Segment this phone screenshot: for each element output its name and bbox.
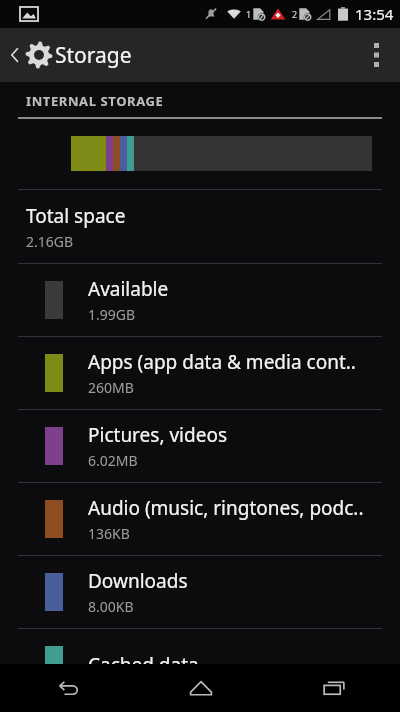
staticText: Pictures, videos [88, 422, 227, 448]
button[interactable]: Cached data [0, 629, 400, 701]
button[interactable]: Back [0, 664, 134, 712]
button[interactable]: Downloads [0, 556, 400, 628]
button[interactable]: More options [352, 28, 400, 82]
staticText: Total space [26, 203, 126, 229]
button[interactable]: Available [0, 264, 400, 336]
staticText: Storage [55, 41, 132, 70]
button[interactable]: Total space [0, 190, 400, 263]
staticText: 260MB [88, 378, 134, 397]
staticText: Apps (app data & media cont.. [88, 349, 356, 375]
staticText: Cached data [88, 652, 199, 678]
button[interactable]: Apps (app data & media cont.. [0, 337, 400, 409]
staticText: INTERNAL STORAGE [26, 92, 164, 110]
staticText: 6.02MB [88, 451, 138, 470]
staticText: Audio (music, ringtones, podc.. [88, 495, 364, 521]
button[interactable]: Navigate up [0, 39, 63, 71]
staticText: 136KB [88, 524, 130, 543]
staticText: 13:54 [355, 4, 394, 24]
button[interactable]: Home [134, 664, 267, 712]
staticText: 2.16GB [26, 232, 74, 251]
button[interactable]: Recent apps [267, 664, 400, 712]
button[interactable]: Pictures, videos [0, 410, 400, 482]
staticText: 2 [292, 8, 298, 20]
staticText: Available [88, 276, 169, 302]
staticText: 8.00KB [88, 597, 134, 616]
button[interactable]: Audio (music, ringtones, podc.. [0, 483, 400, 555]
staticText: 1.99GB [88, 305, 136, 324]
staticText: Downloads [88, 568, 188, 594]
staticText: 1 [246, 8, 252, 20]
